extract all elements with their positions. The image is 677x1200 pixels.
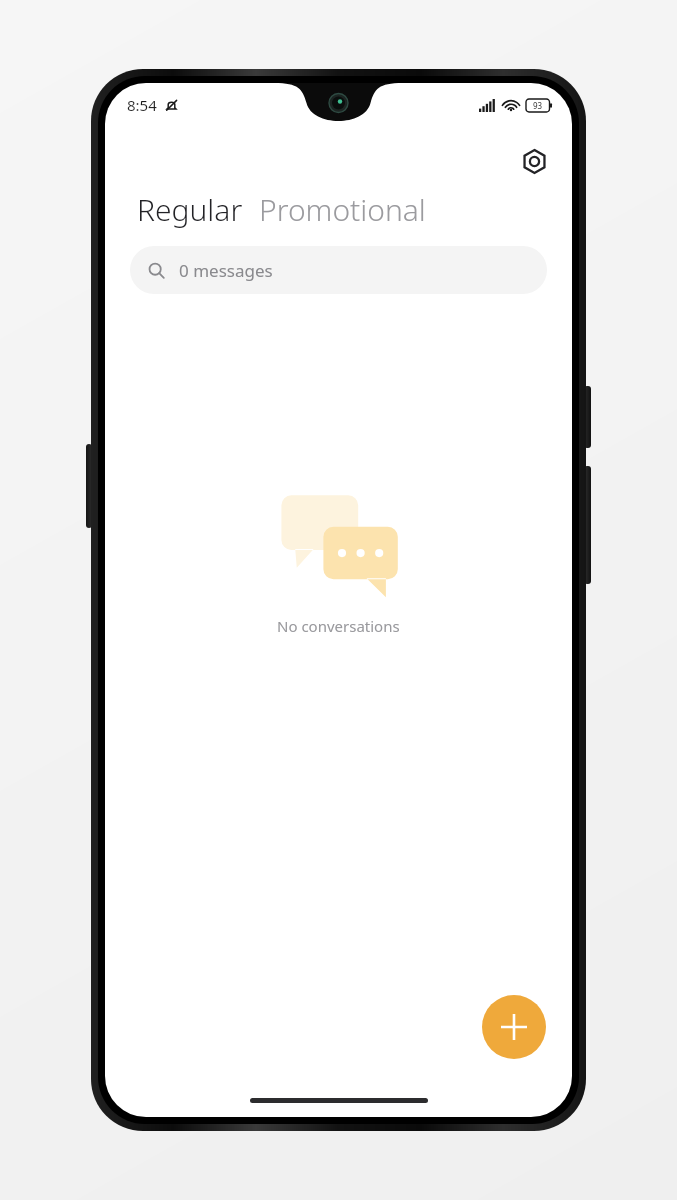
button[interactable]: New conversation <box>482 995 546 1059</box>
button[interactable]: Regular <box>137 189 243 230</box>
staticText: 93 <box>533 100 543 111</box>
staticText: Promotional <box>259 189 426 230</box>
staticText: 8:54 <box>127 95 157 115</box>
staticText: 0 messages <box>179 259 273 282</box>
button[interactable]: Settings <box>514 141 554 181</box>
staticText: No conversations <box>277 616 400 636</box>
staticText: Regular <box>137 189 243 230</box>
button[interactable]: Promotional <box>259 189 426 230</box>
button[interactable]: 0 messages <box>130 246 547 294</box>
